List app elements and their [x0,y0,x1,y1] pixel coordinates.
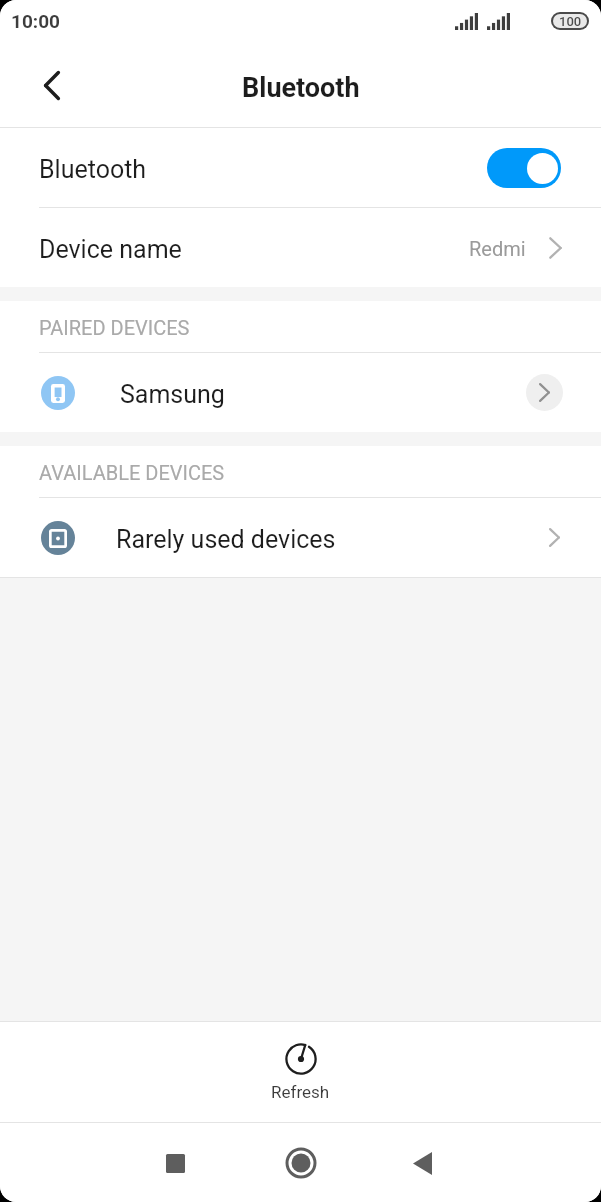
staticText: Rarely used devices [116,525,336,554]
button[interactable]: Bluetooth on [487,148,561,188]
staticText: 100 [559,14,582,28]
button[interactable]: Device name [0,208,601,287]
button[interactable]: Samsung [0,353,601,432]
button[interactable]: Refresh [0,1022,601,1122]
button[interactable]: Back [26,59,78,111]
staticText: Bluetooth [39,155,147,184]
staticText: Device name [39,235,182,264]
staticText: Redmi [469,237,526,260]
staticText: 10:00 [11,10,60,32]
staticText: PAIRED DEVICES [39,316,190,339]
button[interactable]: Bluetooth [0,128,601,207]
staticText: Refresh [271,1082,330,1102]
button[interactable]: Back [392,1133,452,1193]
button[interactable]: Rarely used devices [0,498,601,577]
staticText: Samsung [120,380,225,409]
button[interactable]: Samsung device settings [526,374,563,411]
button[interactable]: Recent apps [145,1133,205,1193]
staticText: AVAILABLE DEVICES [39,461,225,484]
button[interactable]: Home [271,1133,331,1193]
staticText: Bluetooth [242,72,360,104]
